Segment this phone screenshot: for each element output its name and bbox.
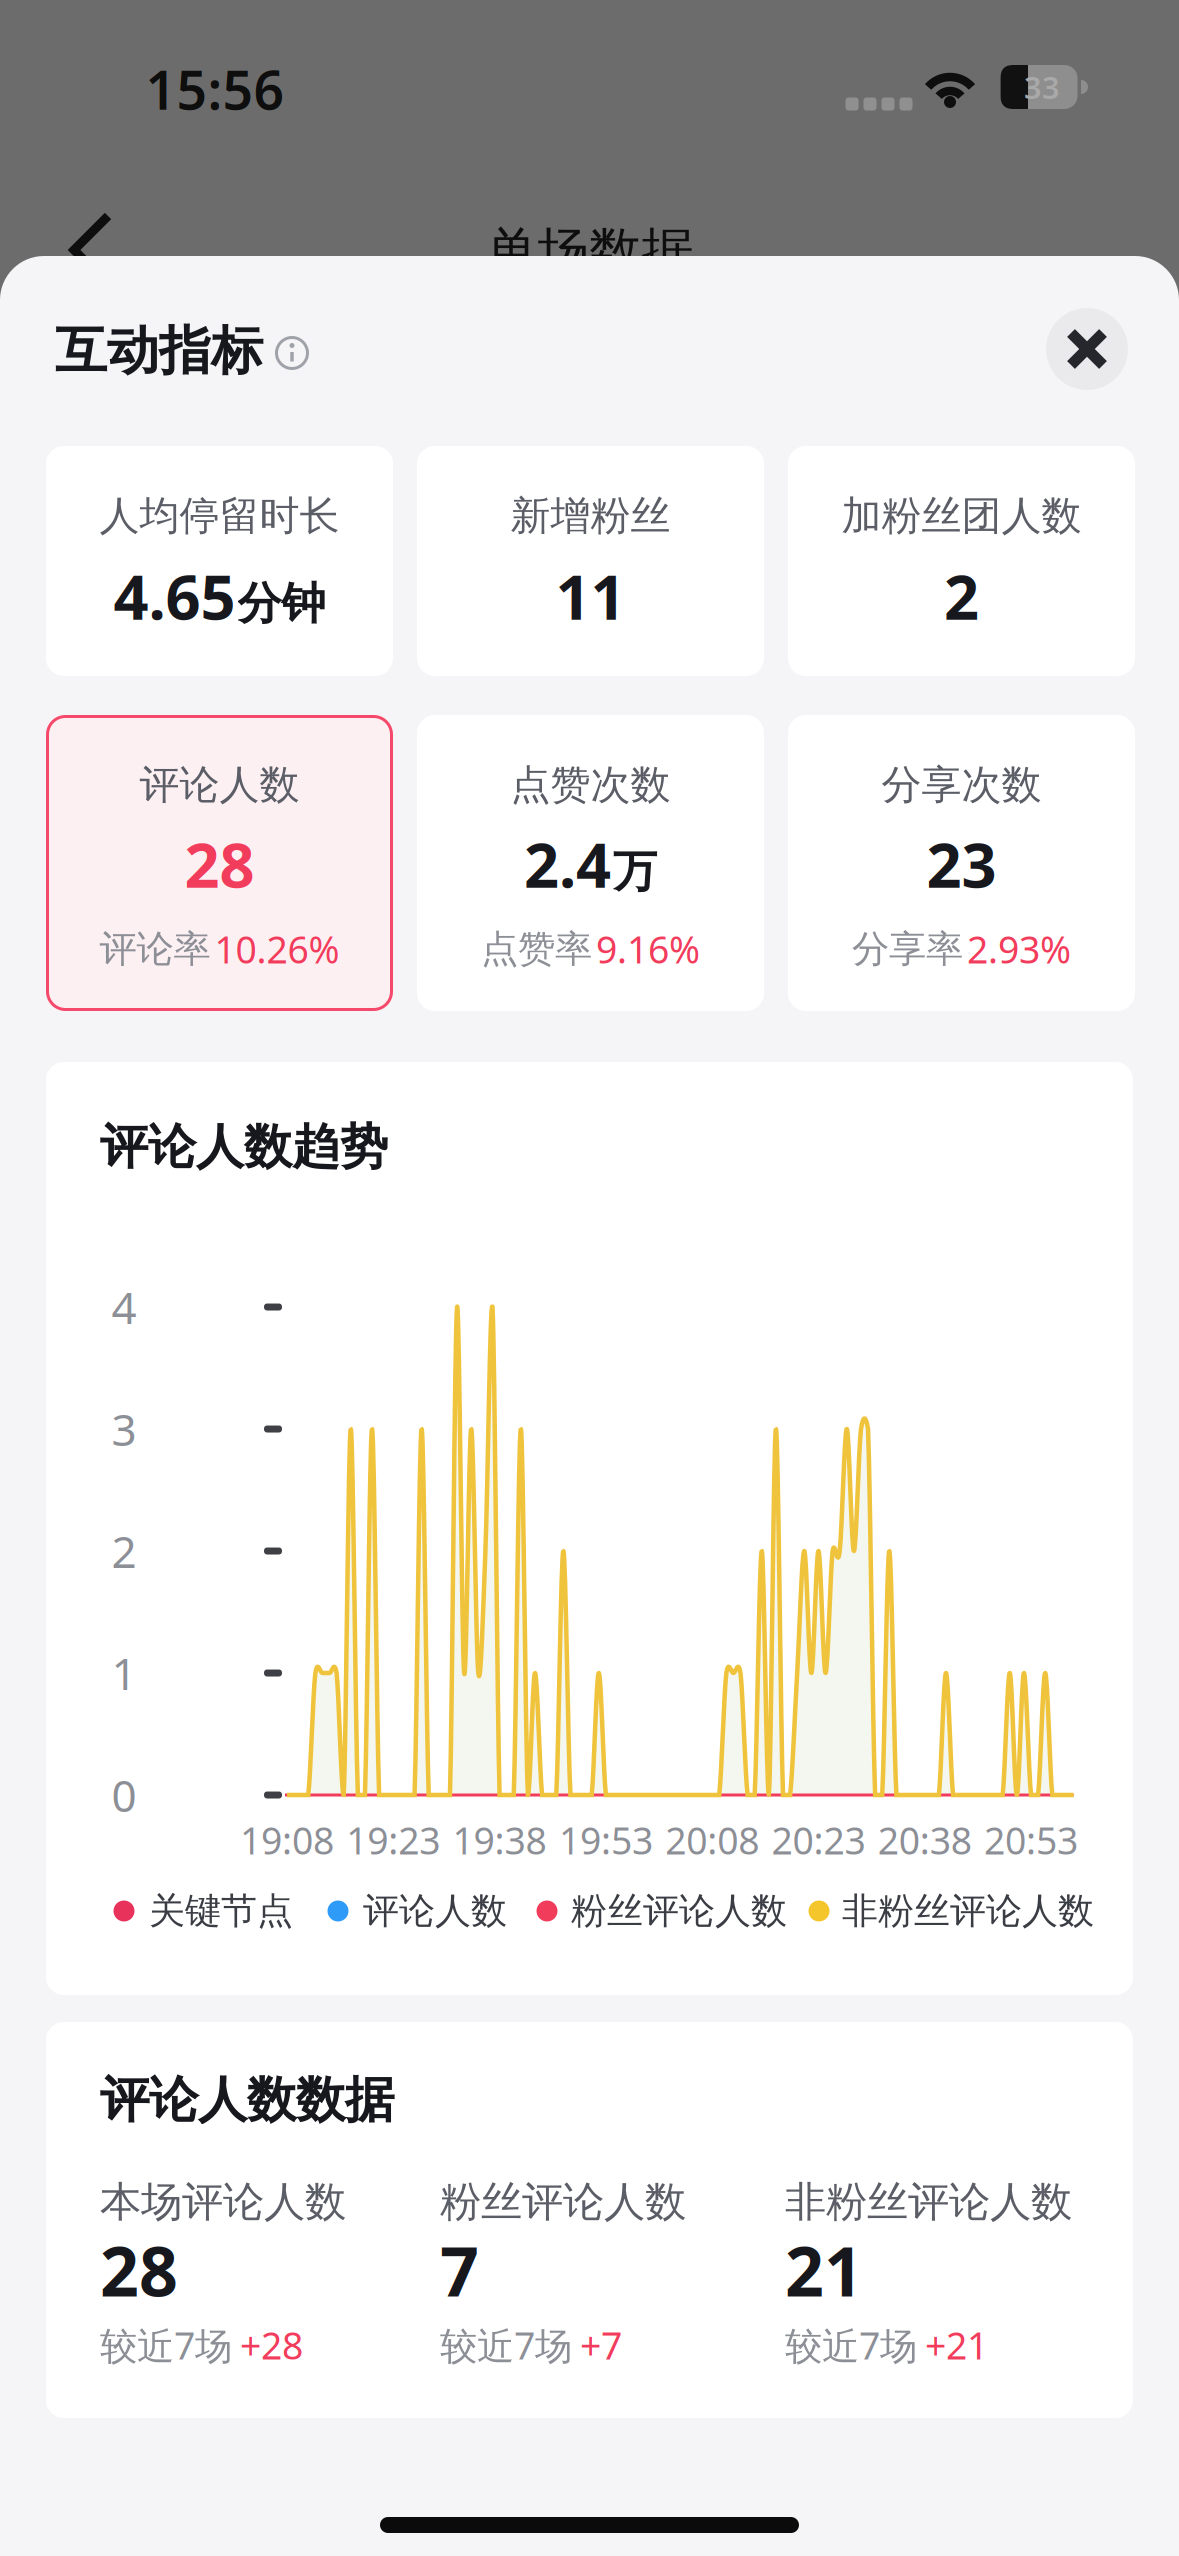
- staticText: 点赞率: [481, 926, 592, 972]
- staticText: 2.4: [524, 823, 611, 905]
- staticText: 20:23: [771, 1815, 865, 1865]
- staticText: 28: [184, 823, 254, 905]
- staticText: 分享次数: [881, 760, 1041, 809]
- staticText: 本场评论人数: [100, 2177, 346, 2227]
- staticText: 3: [111, 1400, 136, 1458]
- staticText: 分钟: [237, 577, 325, 631]
- staticText: +28: [240, 2320, 303, 2370]
- staticText: 较近7场: [440, 2320, 572, 2370]
- staticText: 19:08: [240, 1815, 334, 1865]
- staticText: 新增粉丝: [510, 491, 670, 540]
- staticText: 23: [926, 823, 996, 905]
- staticText: 2: [944, 555, 979, 637]
- button[interactable]: About interaction metrics: [270, 331, 314, 375]
- staticText: 非粉丝评论人数: [842, 1889, 1094, 1933]
- staticText: 11: [555, 555, 625, 637]
- staticText: 19:53: [559, 1815, 653, 1865]
- button[interactable]: 分享次数: [788, 715, 1135, 1011]
- staticText: 较近7场: [100, 2320, 232, 2370]
- staticText: 关键节点: [149, 1889, 293, 1933]
- staticText: 分享率: [852, 926, 963, 972]
- staticText: 4.65: [113, 555, 235, 637]
- staticText: 20:53: [984, 1815, 1078, 1865]
- button[interactable]: 新增粉丝: [417, 446, 764, 676]
- staticText: 评论人数趋势: [100, 1117, 388, 1176]
- staticText: 单场数据: [485, 220, 693, 284]
- staticText: 19:38: [453, 1815, 547, 1865]
- button[interactable]: Close: [1046, 308, 1128, 390]
- staticText: 7: [440, 2225, 479, 2315]
- button[interactable]: 加粉丝团人数: [788, 446, 1135, 676]
- staticText: 较近7场: [785, 2320, 917, 2370]
- staticText: 19:23: [346, 1815, 440, 1865]
- staticText: 评论人数: [363, 1889, 507, 1933]
- staticText: 粉丝评论人数: [571, 1889, 787, 1933]
- staticText: 2: [111, 1522, 136, 1580]
- staticText: 4: [111, 1278, 136, 1336]
- staticText: +21: [925, 2320, 988, 2370]
- staticText: 评论人数: [139, 760, 299, 809]
- button[interactable]: 点赞次数: [417, 715, 764, 1011]
- staticText: 0: [111, 1766, 136, 1824]
- staticText: 1: [111, 1644, 136, 1702]
- staticText: +7: [580, 2320, 622, 2370]
- staticText: 2.93%: [967, 924, 1071, 974]
- staticText: 万: [613, 845, 657, 899]
- staticText: 9.16%: [596, 924, 700, 974]
- staticText: 20:38: [878, 1815, 972, 1865]
- staticText: 20:08: [665, 1815, 759, 1865]
- staticText: 15:56: [145, 54, 284, 124]
- button[interactable]: 评论人数: [46, 715, 393, 1011]
- staticText: 21: [785, 2225, 863, 2315]
- staticText: 评论率: [99, 926, 210, 972]
- staticText: 33: [1024, 67, 1060, 107]
- staticText: 点赞次数: [510, 760, 670, 809]
- staticText: 28: [100, 2225, 178, 2315]
- staticText: 互动指标: [55, 319, 263, 383]
- staticText: 非粉丝评论人数: [785, 2177, 1072, 2227]
- staticText: 粉丝评论人数: [440, 2177, 686, 2227]
- button[interactable]: 人均停留时长: [46, 446, 393, 676]
- staticText: 加粉丝团人数: [841, 491, 1081, 540]
- staticText: 人均停留时长: [99, 491, 339, 540]
- staticText: 评论人数数据: [100, 2070, 394, 2130]
- staticText: 10.26%: [214, 924, 339, 974]
